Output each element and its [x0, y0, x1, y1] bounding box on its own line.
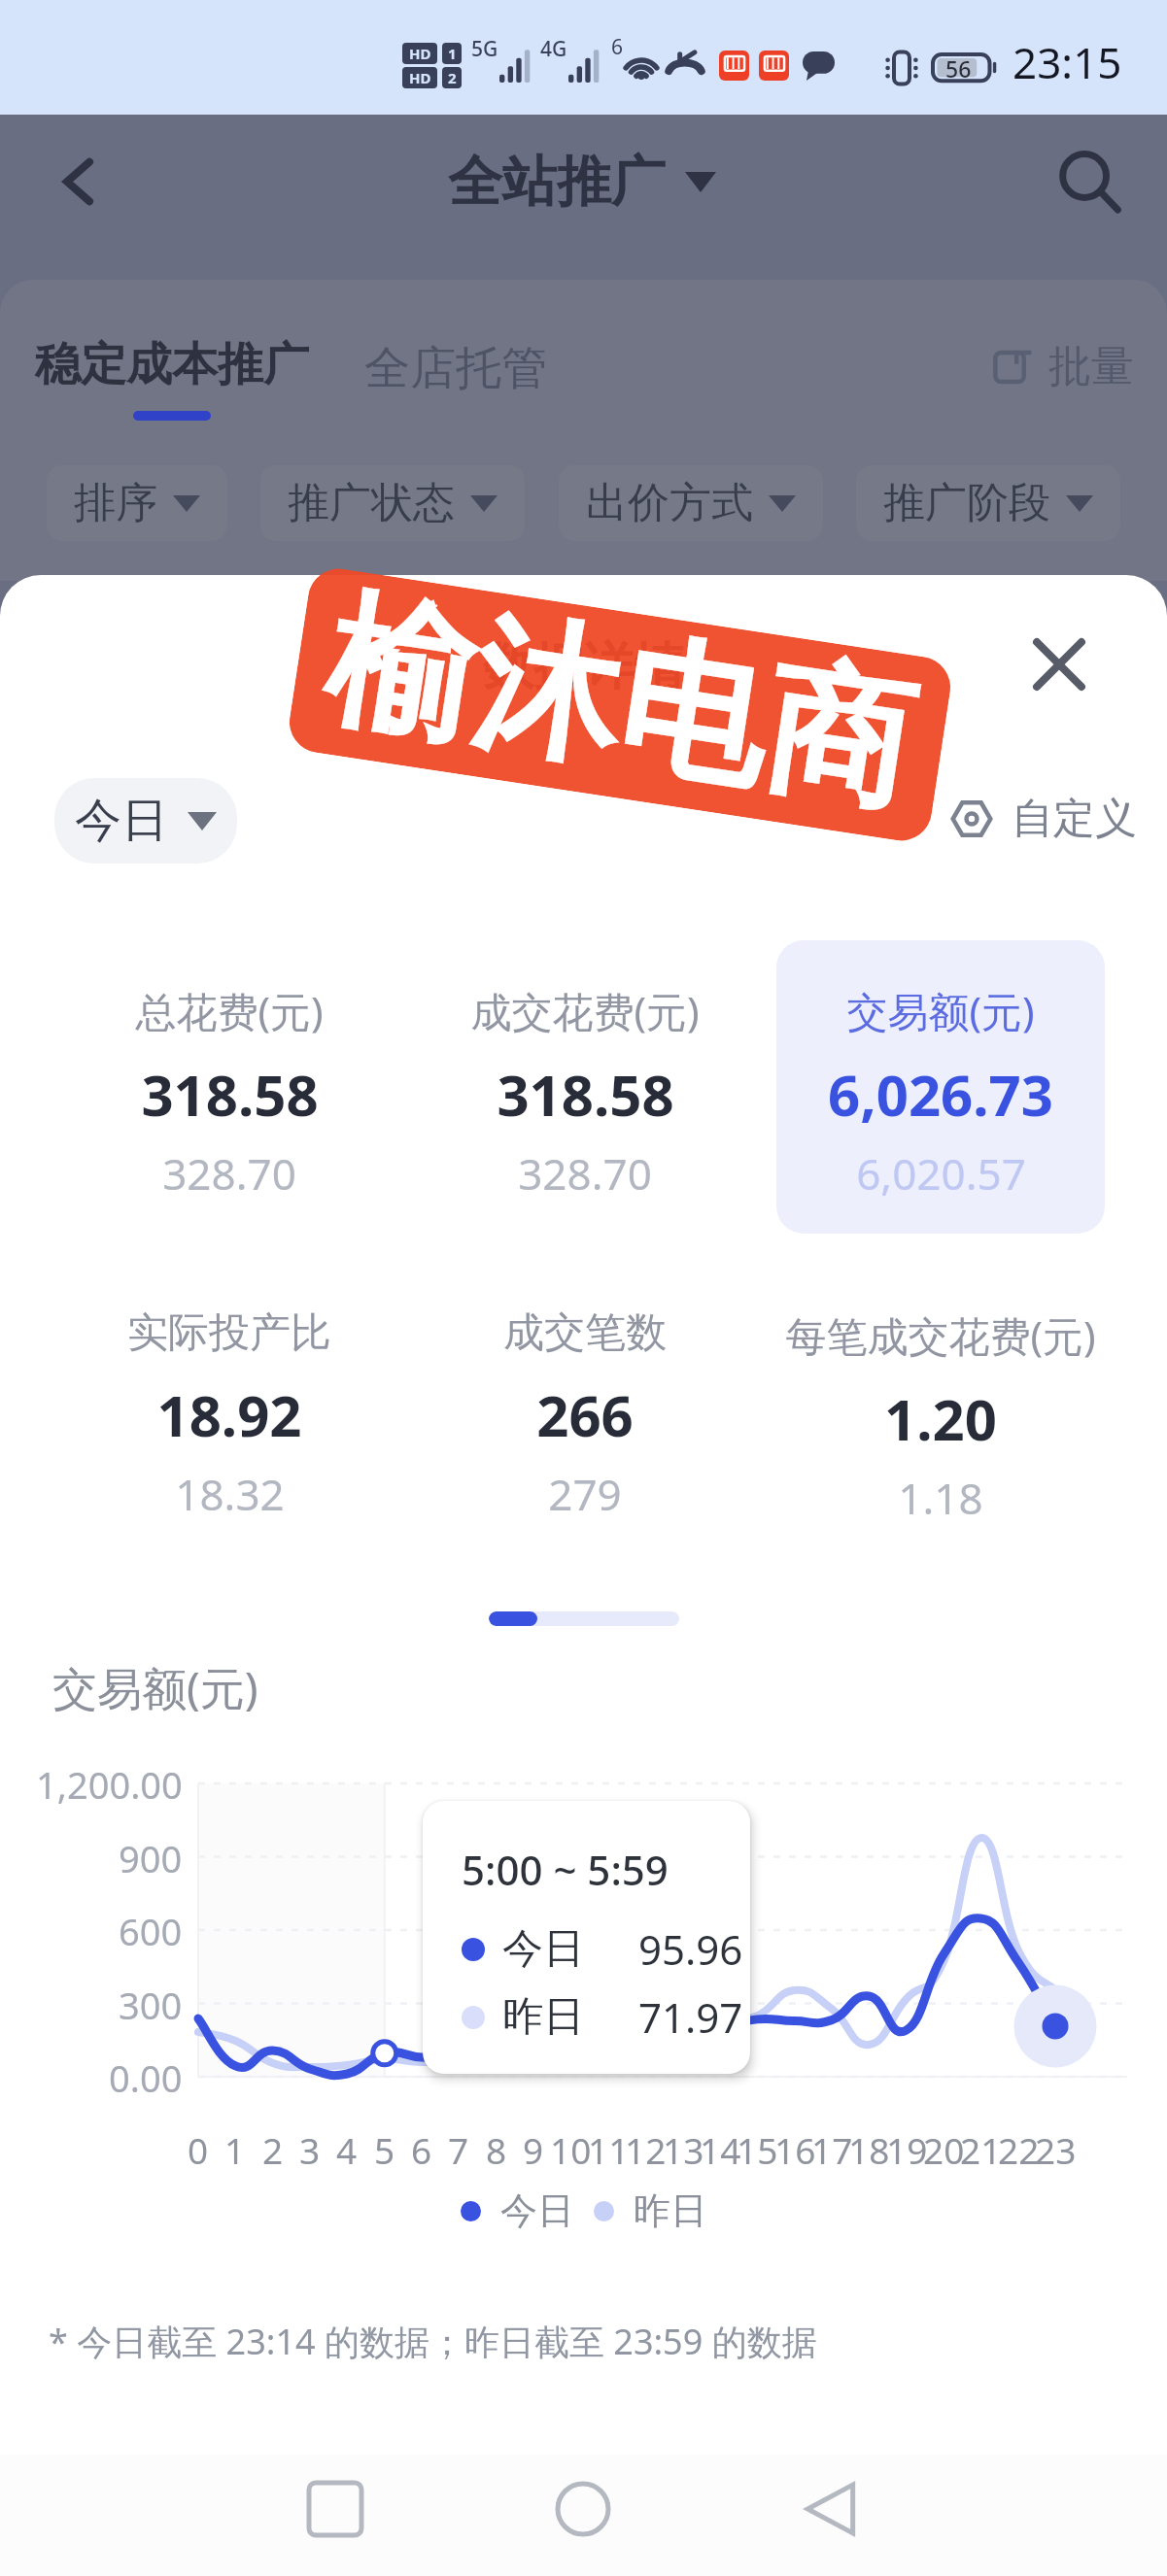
- staticText: 推广阶段: [883, 477, 1050, 529]
- staticText: 批量: [1048, 340, 1134, 393]
- staticText: 4: [336, 2125, 358, 2174]
- staticText: 全店托管: [364, 340, 547, 397]
- staticText: 6: [611, 33, 624, 61]
- button[interactable]: 推广阶段: [856, 465, 1120, 541]
- button[interactable]: Recents: [282, 2456, 389, 2562]
- staticText: 18.32: [175, 1465, 285, 1523]
- staticText: 今日: [502, 1923, 584, 1975]
- staticText: 交易额(元): [846, 983, 1035, 1038]
- staticText: 1.20: [884, 1380, 997, 1457]
- staticText: 稳定成本推广: [35, 336, 309, 393]
- button[interactable]: 稳定成本推广: [35, 336, 309, 421]
- staticText: 18: [848, 2125, 890, 2174]
- button[interactable]: Back: [35, 138, 122, 225]
- button[interactable]: 排序: [47, 465, 227, 541]
- staticText: 排序: [74, 477, 157, 529]
- staticText: 21: [960, 2125, 1002, 2174]
- button[interactable]: 自定义: [951, 793, 1137, 845]
- staticText: 328.70: [162, 1144, 296, 1203]
- staticText: 今日: [75, 792, 168, 850]
- staticText: 5: [374, 2125, 395, 2174]
- staticText: 昨日: [502, 1991, 584, 2043]
- staticText: 11: [588, 2125, 630, 2174]
- button[interactable]: 成交笔数: [421, 1265, 749, 1558]
- button[interactable]: 推广状态: [260, 465, 525, 541]
- staticText: HD: [409, 44, 431, 63]
- staticText: 900: [119, 1833, 183, 1881]
- staticText: 12: [625, 2125, 667, 2174]
- staticText: 推广状态: [288, 477, 455, 529]
- staticText: 全站推广: [448, 148, 666, 217]
- staticText: 318.58: [141, 1056, 319, 1133]
- staticText: 23: [1035, 2125, 1077, 2174]
- staticText: 20: [923, 2125, 965, 2174]
- staticText: HD: [409, 68, 431, 87]
- button[interactable]: 批量: [992, 340, 1134, 393]
- staticText: 昨日: [634, 2187, 707, 2234]
- staticText: 0: [188, 2125, 209, 2174]
- staticText: 4G: [540, 35, 567, 63]
- button[interactable]: 出价方式: [559, 465, 823, 541]
- staticText: 1.18: [898, 1469, 983, 1527]
- staticText: 成交笔数: [503, 1307, 667, 1359]
- staticText: 3: [299, 2125, 321, 2174]
- button[interactable]: 成交花费(元): [421, 940, 749, 1234]
- staticText: 总花费(元): [135, 983, 324, 1038]
- button[interactable]: 今日: [54, 778, 237, 864]
- staticText: 15: [737, 2125, 778, 2174]
- staticText: 出价方式: [586, 477, 753, 529]
- button[interactable]: Home: [530, 2456, 636, 2562]
- staticText: 18.92: [156, 1376, 302, 1453]
- button[interactable]: 全店托管: [364, 340, 547, 397]
- staticText: 10: [550, 2125, 592, 2174]
- staticText: 17: [811, 2125, 853, 2174]
- staticText: 328.70: [518, 1144, 652, 1203]
- staticText: 成交花费(元): [470, 983, 700, 1038]
- staticText: 今日: [500, 2187, 574, 2234]
- button[interactable]: 每笔成交花费(元): [776, 1265, 1105, 1558]
- staticText: 1: [224, 2125, 246, 2174]
- button[interactable]: 总花费(元): [65, 940, 394, 1234]
- button[interactable]: 实际投产比: [65, 1265, 394, 1558]
- staticText: 数据详情: [483, 635, 685, 699]
- staticText: 13: [663, 2125, 704, 2174]
- staticText: 7: [448, 2125, 469, 2174]
- staticText: * 今日截至 23:14 的数据；昨日截至 23:59 的数据: [49, 2318, 817, 2365]
- staticText: 6,020.57: [856, 1144, 1026, 1203]
- staticText: 23:15: [1013, 33, 1122, 91]
- staticText: 2: [448, 68, 457, 87]
- staticText: 交易额(元): [52, 1657, 258, 1718]
- staticText: 56: [945, 53, 972, 84]
- staticText: 2: [262, 2125, 284, 2174]
- staticText: 1: [448, 44, 457, 63]
- button[interactable]: Back: [777, 2456, 884, 2562]
- staticText: 8: [486, 2125, 507, 2174]
- staticText: 95.96: [638, 1921, 743, 1977]
- staticText: 16: [774, 2125, 816, 2174]
- button[interactable]: Search: [1041, 134, 1138, 231]
- staticText: 实际投产比: [127, 1307, 331, 1359]
- staticText: 0.00: [109, 2052, 183, 2101]
- staticText: 22: [998, 2125, 1040, 2174]
- staticText: 6: [411, 2125, 432, 2174]
- staticText: 1,200.00: [36, 1759, 183, 1808]
- button[interactable]: 全站推广: [448, 148, 716, 217]
- staticText: 71.97: [638, 1989, 743, 2045]
- staticText: 266: [536, 1376, 634, 1453]
- staticText: 榆沐电商: [314, 569, 926, 841]
- staticText: 14: [700, 2125, 741, 2174]
- staticText: 自定义: [1012, 793, 1137, 845]
- staticText: 318.58: [497, 1056, 674, 1133]
- staticText: 300: [119, 1980, 183, 2028]
- staticText: 9: [523, 2125, 544, 2174]
- button[interactable]: 交易额(元): [776, 940, 1105, 1234]
- button[interactable]: Page indicator: [489, 1611, 679, 1626]
- staticText: 6,026.73: [828, 1056, 1053, 1133]
- button[interactable]: Close: [1020, 626, 1098, 703]
- staticText: 5:00 ~ 5:59: [462, 1842, 669, 1897]
- staticText: 19: [886, 2125, 928, 2174]
- staticText: 279: [548, 1465, 622, 1523]
- staticText: 每笔成交花费(元): [785, 1307, 1096, 1363]
- staticText: 5G: [471, 35, 498, 63]
- staticText: 600: [119, 1906, 183, 1954]
